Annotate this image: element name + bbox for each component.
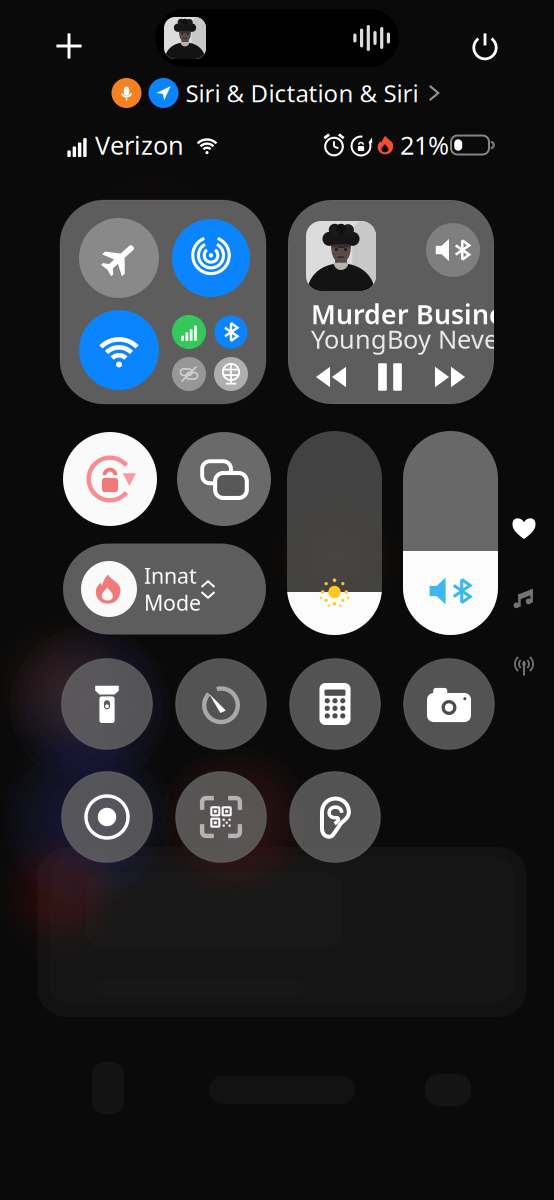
- button[interactable]: Brightness: [287, 431, 382, 635]
- button[interactable]: Code Scanner: [175, 771, 266, 862]
- staticText: Siri & Dictation & Siri: [185, 77, 418, 109]
- button[interactable]: Camera: [403, 658, 494, 749]
- button[interactable]: VPN: [214, 357, 248, 391]
- staticText: 21%: [400, 128, 449, 162]
- staticText: Innat: [144, 561, 197, 590]
- button[interactable]: Favorites page: [504, 508, 544, 548]
- button[interactable]: Hearing: [289, 771, 380, 862]
- button[interactable]: Personal Hotspot: [172, 357, 206, 391]
- staticText: YoungBoy Never Broke: [311, 322, 554, 356]
- button[interactable]: Next track: [426, 356, 474, 398]
- button[interactable]: Cellular Data: [172, 315, 206, 349]
- button[interactable]: Siri & Dictation & Siri: [111, 73, 442, 113]
- button[interactable]: Screen Recording: [61, 771, 152, 862]
- button[interactable]: Flashlight: [61, 658, 152, 749]
- button[interactable]: AirDrop: [172, 219, 250, 297]
- button[interactable]: Add a control: [41, 18, 97, 74]
- button[interactable]: Media page: [503, 579, 543, 619]
- staticText: Murder Business: [311, 296, 531, 332]
- button[interactable]: Power: [457, 18, 513, 74]
- button[interactable]: Volume: [403, 431, 498, 635]
- button[interactable]: Audio output: [426, 223, 480, 277]
- button[interactable]: Calculator: [289, 658, 380, 749]
- button[interactable]: Timer: [175, 658, 266, 749]
- staticText: Verizon: [95, 128, 184, 162]
- button[interactable]: Pause: [366, 356, 414, 398]
- button[interactable]: Airplane Mode: [79, 218, 159, 298]
- button[interactable]: Screen Mirroring: [177, 432, 271, 526]
- button[interactable]: Connectivity page: [504, 645, 544, 685]
- button[interactable]: Wi-Fi: [79, 310, 159, 390]
- button[interactable]: Bluetooth: [214, 315, 247, 348]
- button[interactable]: Rotation Lock: [63, 432, 157, 526]
- staticText: Mode: [144, 588, 201, 617]
- button[interactable]: Focus: Innat Mode: [63, 543, 266, 634]
- button[interactable]: Previous track: [307, 356, 355, 398]
